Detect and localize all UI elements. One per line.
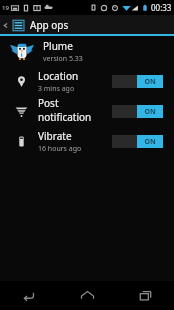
button[interactable]: Post notification [0, 96, 174, 126]
staticText: 3 mins ago [38, 84, 75, 94]
staticText: ON [144, 77, 156, 87]
staticText: 19 [2, 4, 9, 12]
staticText: ON [144, 107, 156, 117]
staticText: 00:33 [151, 2, 172, 13]
staticText: Vibrate [38, 129, 72, 143]
staticText: version 5.33 [43, 54, 83, 64]
button[interactable]: Plume [0, 36, 174, 66]
button[interactable]: Vibrate [0, 126, 174, 156]
staticText: Plume [43, 39, 73, 53]
button[interactable]: Permission toggle, on [112, 105, 163, 118]
button[interactable]: Back [0, 281, 58, 310]
staticText: App ops [30, 18, 69, 32]
button[interactable]: Permission toggle, on [112, 135, 163, 148]
staticText: 16 hours ago [38, 144, 82, 154]
staticText: Location [38, 69, 79, 83]
button[interactable]: Permission toggle, on [112, 75, 163, 88]
staticText: ON [144, 137, 156, 147]
staticText: Post notification [38, 96, 112, 124]
button[interactable]: Recent apps [116, 281, 174, 310]
button[interactable]: Navigate up, App ops [0, 18, 174, 32]
button[interactable]: Location [0, 66, 174, 96]
button[interactable]: Home [58, 281, 116, 310]
